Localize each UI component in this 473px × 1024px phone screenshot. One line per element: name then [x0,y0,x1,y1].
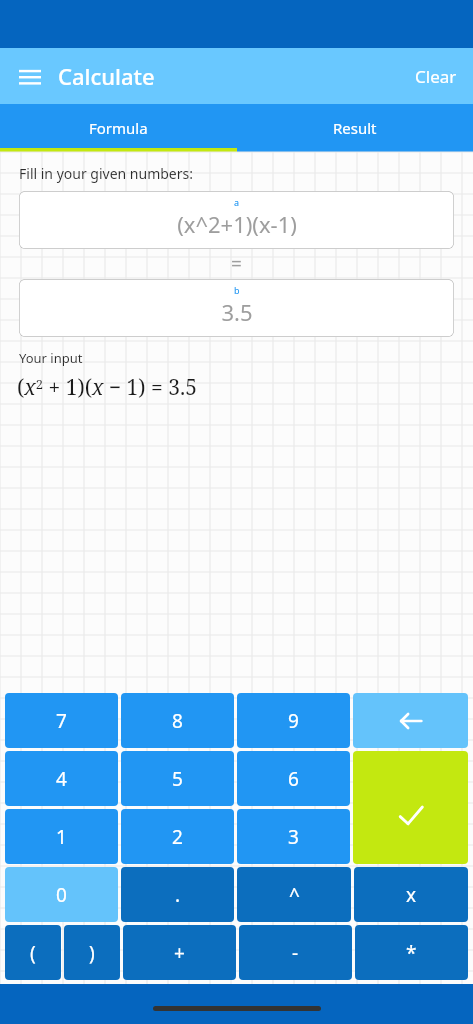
staticText: 0 [56,882,67,908]
staticText: 4 [56,766,67,792]
staticText: 2 [172,824,183,850]
staticText: Result [333,118,377,138]
button[interactable]: 1 [5,809,118,864]
staticText: a [234,196,240,208]
staticText: - [292,940,299,966]
button[interactable]: + [123,925,236,980]
staticText: ) [89,940,95,966]
button[interactable]: - [239,925,352,980]
staticText: ^ [289,882,300,908]
button[interactable]: Result [236,104,473,152]
staticText: (x2 + 1)(x − 1) = 3.5 [17,373,197,402]
button[interactable]: 4 [5,751,118,806]
staticText: 7 [56,708,67,734]
staticText: 3 [288,824,299,850]
button[interactable]: ) [64,925,120,980]
staticText: ( [30,940,36,966]
staticText: 9 [288,708,299,734]
button[interactable]: Clear [399,55,473,98]
button[interactable]: ^ [237,867,351,922]
button[interactable]: x [354,867,468,922]
button[interactable]: 0 [5,867,118,922]
button[interactable]: Confirm [353,751,468,864]
button[interactable]: 3 [237,809,350,864]
staticText: Calculate [58,61,155,91]
staticText: 3.5 [221,297,253,327]
button[interactable]: Backspace [353,693,468,748]
button[interactable]: a [19,191,454,249]
button[interactable]: 9 [237,693,350,748]
staticText: = [231,251,242,277]
button[interactable]: Menu [10,56,50,96]
staticText: * [406,940,417,966]
staticText: Fill in your given numbers: [19,164,193,183]
button[interactable]: * [355,925,468,980]
button[interactable]: 2 [121,809,234,864]
staticText: Clear [415,65,457,88]
staticText: x [406,882,417,908]
staticText: Formula [89,118,148,138]
staticText: + [174,940,185,966]
button[interactable]: 6 [237,751,350,806]
button[interactable]: ( [5,925,61,980]
button[interactable]: Formula [0,104,236,152]
button[interactable]: 5 [121,751,234,806]
button[interactable]: 7 [5,693,118,748]
staticText: 8 [172,708,183,734]
staticText: 6 [288,766,299,792]
staticText: 1 [56,824,67,850]
button[interactable]: 8 [121,693,234,748]
button[interactable]: b [19,279,454,337]
staticText: b [234,284,240,296]
staticText: . [175,882,181,908]
staticText: 5 [172,766,183,792]
staticText: (x^2+1)(x-1) [177,209,297,239]
button[interactable]: . [121,867,234,922]
staticText: Your input [19,349,83,367]
